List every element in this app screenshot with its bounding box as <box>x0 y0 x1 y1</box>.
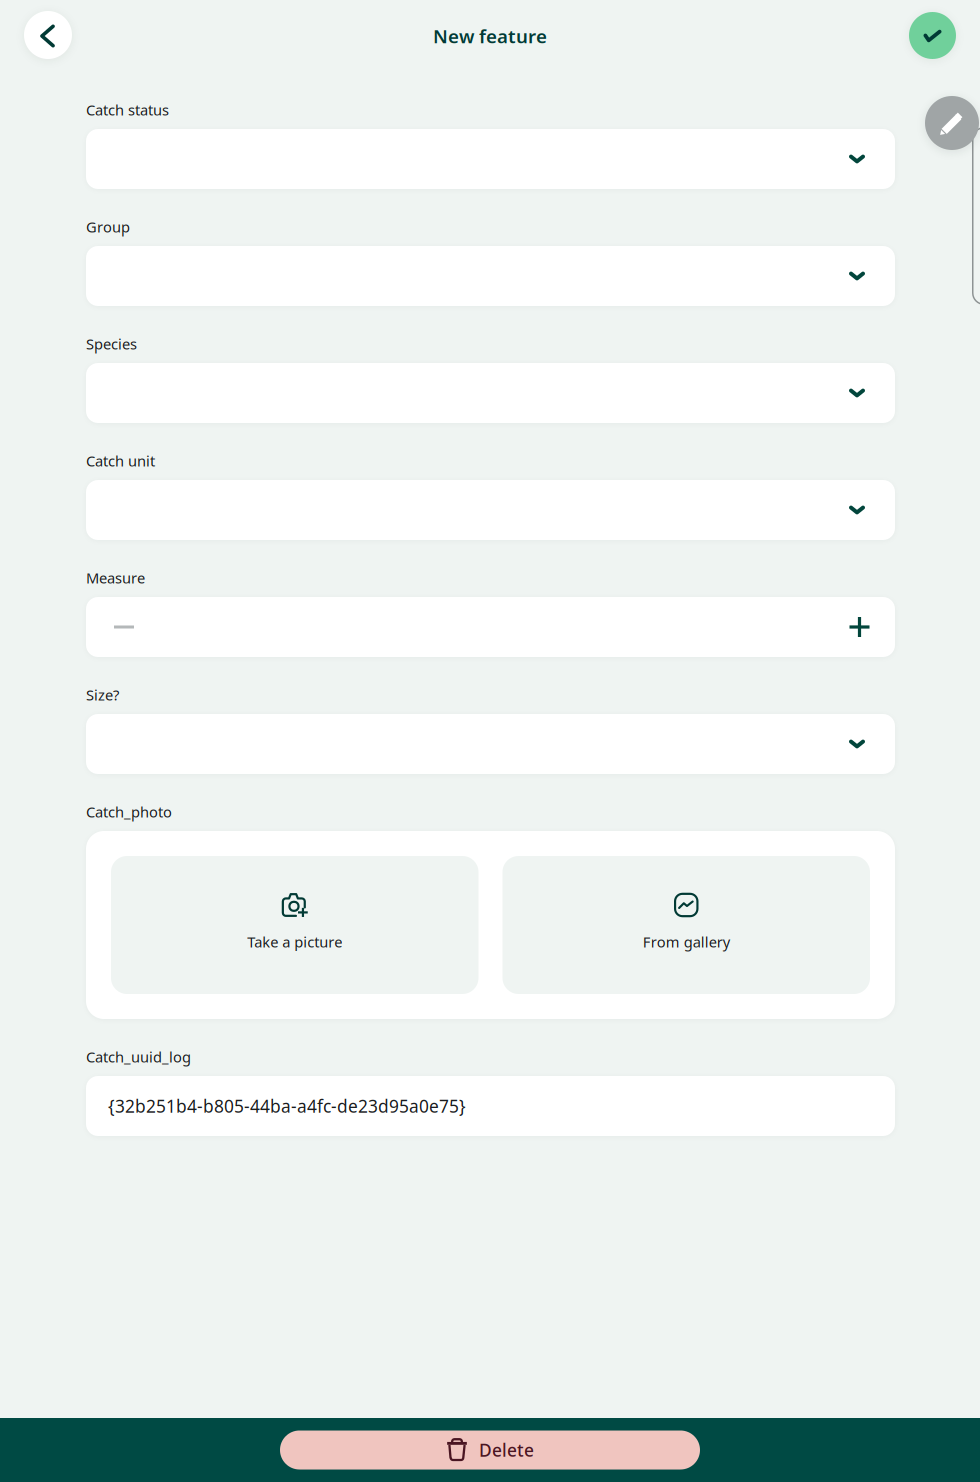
staticText: New feature <box>433 24 547 48</box>
button[interactable] <box>86 363 895 423</box>
staticText: Catch unit <box>86 451 155 470</box>
button[interactable]: Back <box>24 11 72 59</box>
button[interactable]: Delete <box>280 1430 700 1469</box>
staticText: Catch_uuid_log <box>86 1047 191 1066</box>
staticText: {32b251b4-b805-44ba-a4fc-de23d95a0e75} <box>108 1094 466 1117</box>
staticText: Catch status <box>86 100 169 119</box>
staticText: Species <box>86 334 137 353</box>
button[interactable] <box>86 129 895 189</box>
button[interactable]: Decrease <box>86 597 162 657</box>
button[interactable] <box>86 480 895 540</box>
staticText: Take a picture <box>247 932 342 951</box>
staticText: Group <box>86 217 130 236</box>
button[interactable] <box>86 714 895 774</box>
staticText: Size? <box>86 685 119 704</box>
button[interactable]: From gallery <box>502 856 870 994</box>
button[interactable]: Save <box>909 12 956 59</box>
staticText: Measure <box>86 568 145 587</box>
staticText: From gallery <box>643 932 730 951</box>
button[interactable]: Edit <box>925 96 979 150</box>
staticText: Catch_photo <box>86 802 172 821</box>
staticText: Delete <box>479 1438 534 1461</box>
button[interactable]: Increase <box>824 597 895 657</box>
button[interactable]: Take a picture <box>111 856 478 994</box>
button[interactable] <box>86 246 895 306</box>
